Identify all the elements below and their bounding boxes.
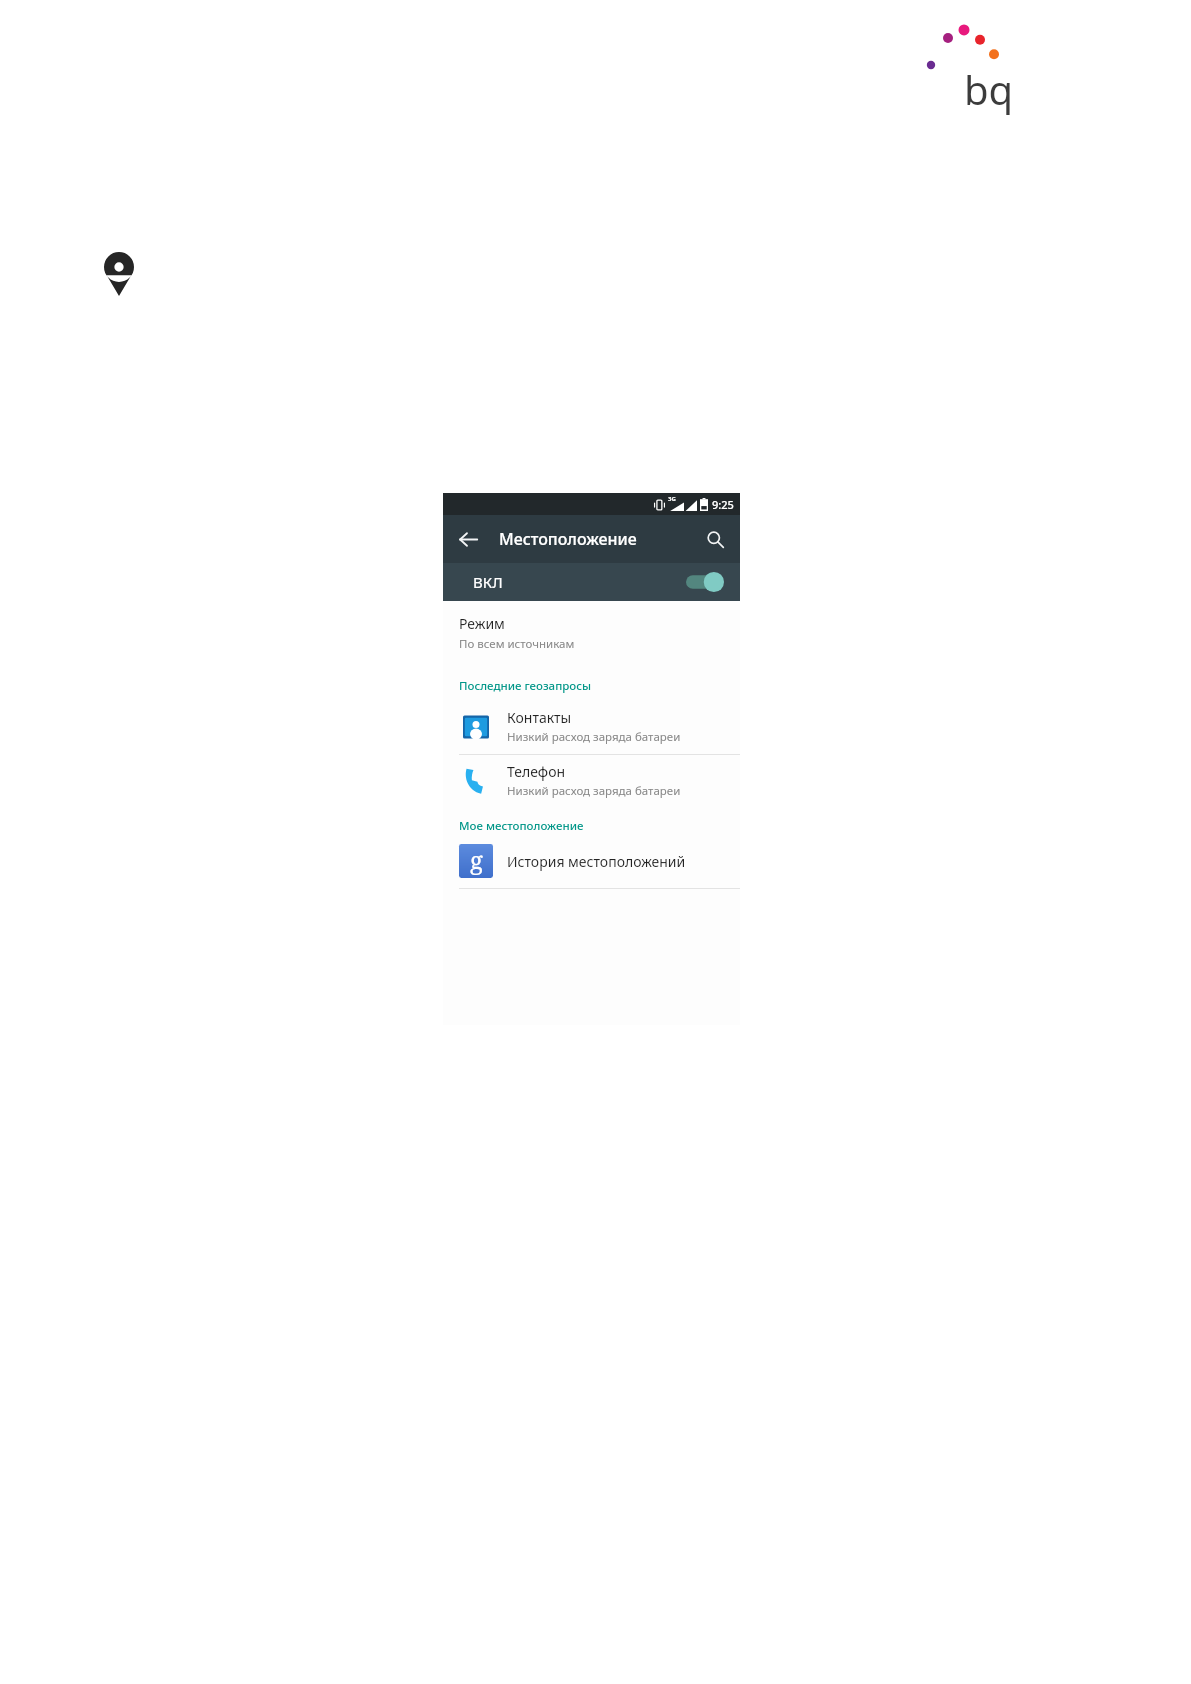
button[interactable]: Назад <box>451 522 485 556</box>
staticText: История местоположений <box>507 852 686 871</box>
staticText: Низкий расход заряда батареи <box>507 783 681 799</box>
staticText: Телефон <box>507 762 566 781</box>
staticText: Последние геозапросы <box>459 678 592 694</box>
staticText: g <box>470 843 483 876</box>
staticText: Режим <box>459 614 505 633</box>
staticText: ВКЛ <box>473 572 503 592</box>
button[interactable]: Режим <box>443 601 740 664</box>
staticText: 3G <box>668 495 676 503</box>
button[interactable]: Переключатель местоположения <box>686 571 724 593</box>
button[interactable]: Поиск <box>698 522 732 556</box>
staticText: 9:25 <box>712 497 734 512</box>
staticText: Местоположение <box>499 528 637 550</box>
staticText: bq <box>964 62 1014 116</box>
button[interactable]: Телефон <box>443 755 740 808</box>
staticText: Мое местоположение <box>459 818 584 834</box>
staticText: Низкий расход заряда батареи <box>507 729 681 745</box>
button[interactable]: ВКЛ <box>443 563 740 601</box>
staticText: Контакты <box>507 708 572 727</box>
button[interactable]: g <box>443 841 740 888</box>
staticText: По всем источникам <box>459 636 575 652</box>
button[interactable]: Контакты <box>443 701 740 754</box>
